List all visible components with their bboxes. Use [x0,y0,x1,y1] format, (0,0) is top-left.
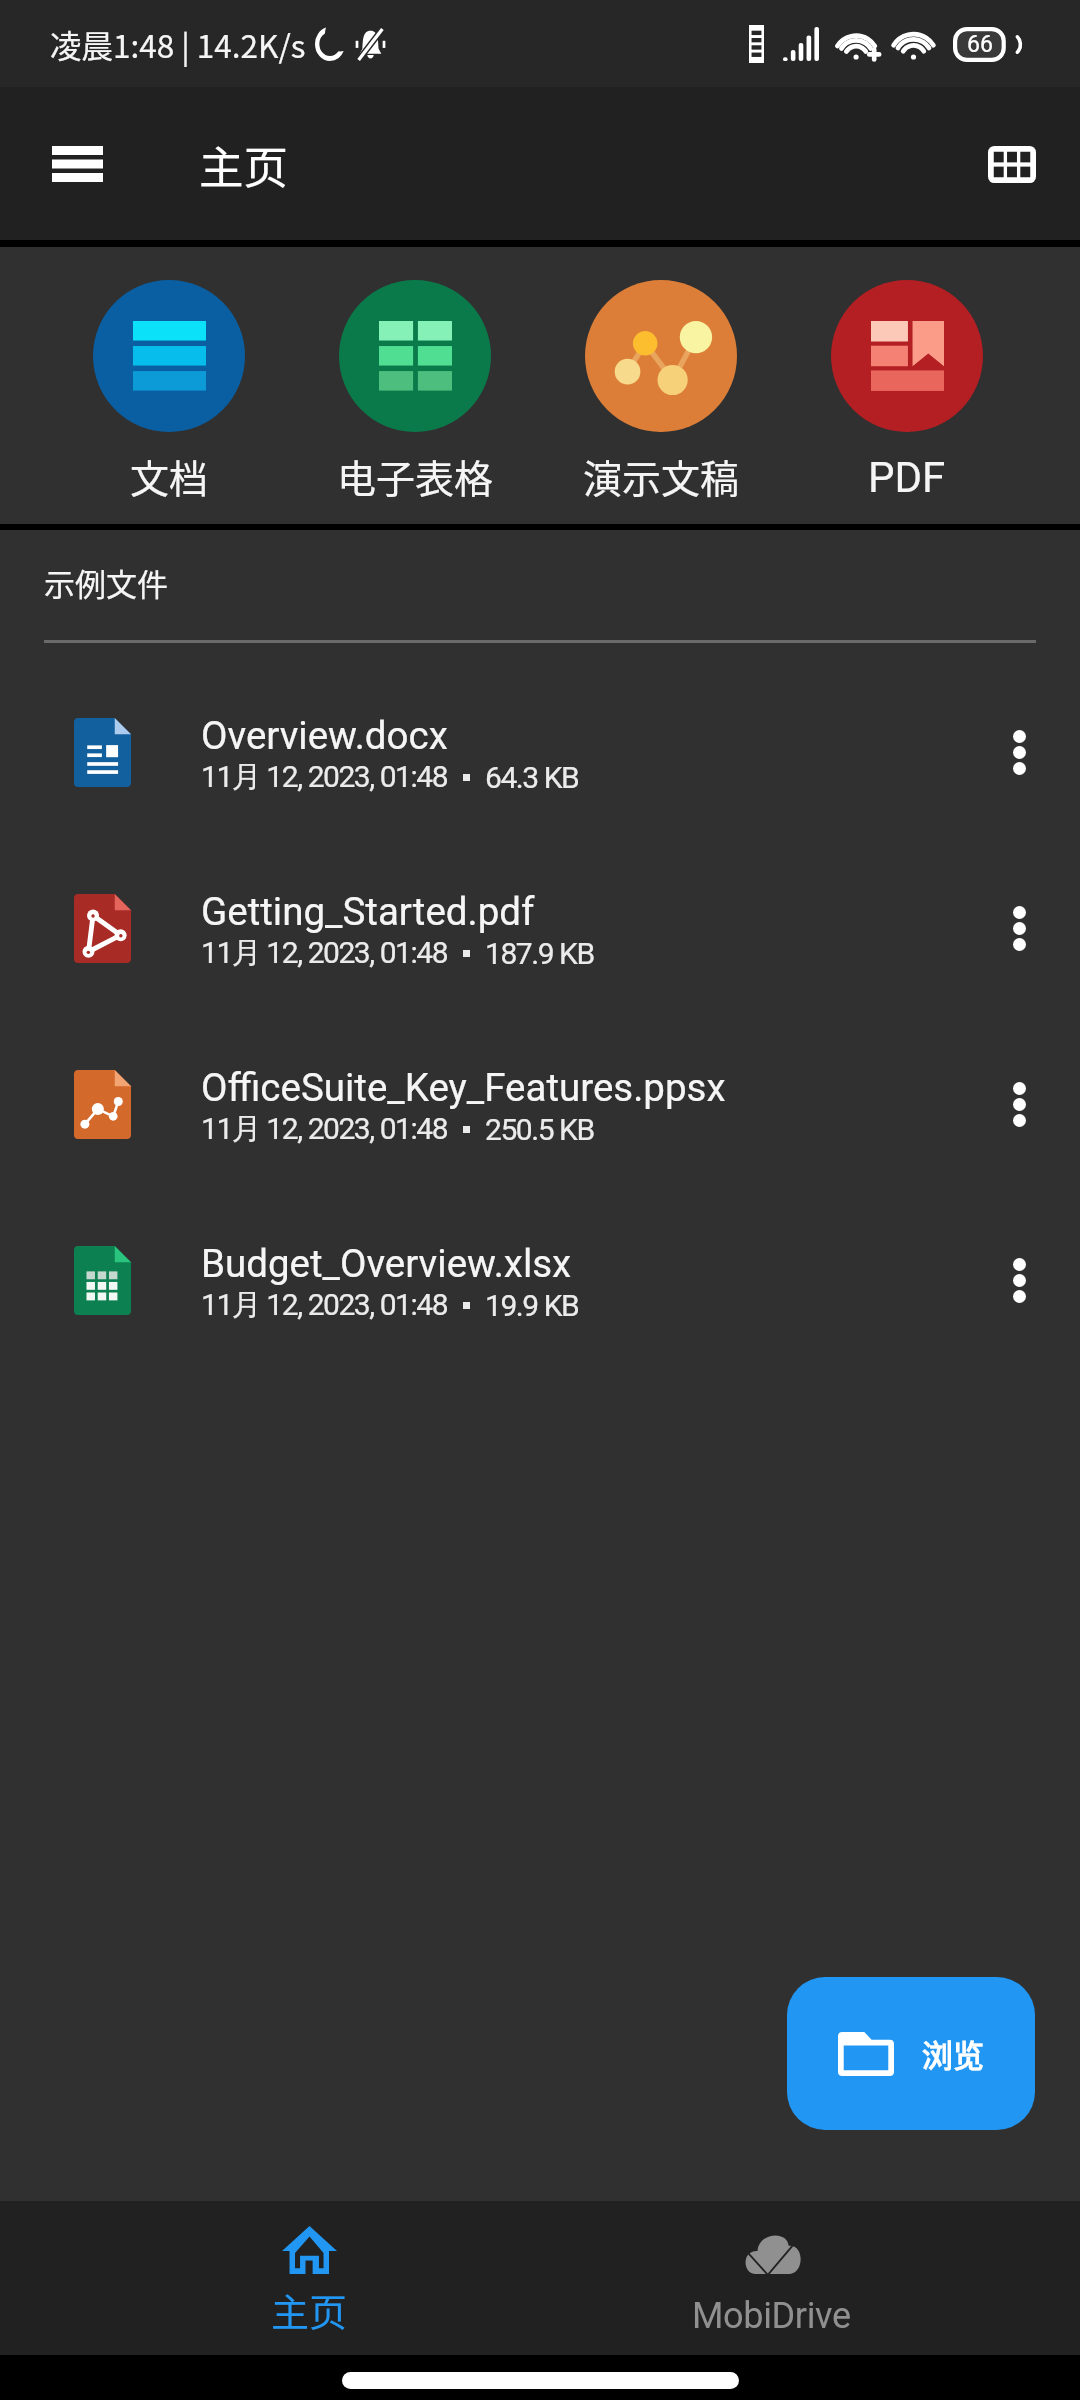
staticText: 11月 12, 2023, 01:48 [201,758,448,796]
staticText: 11月 12, 2023, 01:48 [201,1286,448,1324]
staticText: 250.5 KB [485,1112,594,1147]
button[interactable]: OfficeSuite_Key_Features.ppsx [0,1016,1080,1192]
staticText: Budget_Overview.xlsx [201,1241,572,1286]
staticText: 64.3 KB [485,760,579,795]
staticText: 66 [967,31,993,58]
staticText: 浏览 [922,2031,984,2076]
staticText: 主页 [271,2282,348,2337]
staticText: 11月 12, 2023, 01:48 [201,934,448,972]
staticText: Getting_Started.pdf [201,889,535,934]
button[interactable]: More options [959,868,1079,988]
staticText: 文档 [130,448,209,504]
button[interactable]: 浏览 [787,1977,1035,2130]
button[interactable]: Menu [25,112,129,216]
staticText: MobiDrive [692,2295,851,2337]
staticText: 示例文件 [44,560,168,605]
staticText: 19.9 KB [485,1288,579,1323]
button[interactable]: 文档 [59,247,279,524]
staticText: 主页 [199,132,289,196]
staticText: 11月 12, 2023, 01:48 [201,1110,448,1148]
staticText: 187.9 KB [485,936,594,971]
staticText: PDF [868,453,946,502]
button[interactable]: 演示文稿 [551,247,771,524]
staticText: 凌晨1:48 | 14.2K/s [50,21,306,67]
button[interactable]: PDF [797,247,1017,524]
button[interactable]: Getting_Started.pdf [0,840,1080,1016]
button[interactable]: MobiDrive [656,2201,886,2355]
button[interactable]: Grid view [960,112,1064,216]
button[interactable]: Overview.docx [0,664,1080,840]
staticText: OfficeSuite_Key_Features.ppsx [201,1065,726,1110]
staticText: 电子表格 [337,448,494,504]
button[interactable]: 主页 [194,2201,424,2355]
staticText: 演示文稿 [583,448,740,504]
button[interactable]: Budget_Overview.xlsx [0,1192,1080,1368]
button[interactable]: More options [959,1044,1079,1164]
button[interactable]: 电子表格 [305,247,525,524]
button[interactable]: More options [959,1220,1079,1340]
button[interactable]: More options [959,692,1079,812]
staticText: Overview.docx [201,713,448,758]
